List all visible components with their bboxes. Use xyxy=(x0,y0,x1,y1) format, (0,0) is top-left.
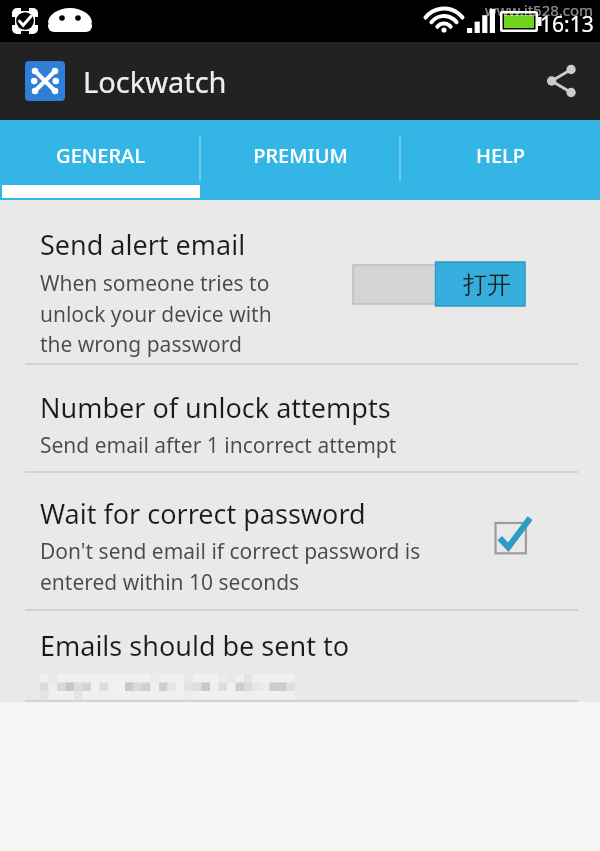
staticText: Lockwatch xyxy=(83,62,227,101)
staticText: 打开 xyxy=(463,270,511,300)
button[interactable]: Wait for correct password checkbox, chec… xyxy=(490,511,536,557)
staticText: Don't send email if correct password is … xyxy=(40,537,421,596)
button[interactable]: HELP xyxy=(400,120,600,200)
staticText: www.it528.com xyxy=(485,0,594,20)
staticText: 16:13 xyxy=(540,10,594,39)
staticText: Emails should be sent to xyxy=(40,627,350,664)
staticText: Wait for correct password xyxy=(40,495,366,532)
button[interactable]: Send alert email switch, on xyxy=(353,262,525,308)
button[interactable]: Number of unlock attempts xyxy=(0,365,600,471)
button[interactable]: PREMIUM xyxy=(200,120,400,200)
button[interactable]: Share xyxy=(528,48,594,114)
staticText: Send alert email xyxy=(40,226,246,263)
button[interactable]: GENERAL xyxy=(0,120,200,200)
staticText: Send email after 1 incorrect attempt xyxy=(40,431,397,460)
button[interactable]: Emails should be sent to xyxy=(0,611,600,700)
button[interactable]: Wait for correct password xyxy=(0,473,600,609)
staticText: GENERAL xyxy=(56,142,145,169)
staticText: PREMIUM xyxy=(253,142,348,169)
staticText: When someone tries to unlock your device… xyxy=(40,269,272,358)
staticText: Number of unlock attempts xyxy=(40,389,391,426)
button[interactable]: Send alert email xyxy=(0,200,600,363)
staticText: HELP xyxy=(476,142,525,169)
